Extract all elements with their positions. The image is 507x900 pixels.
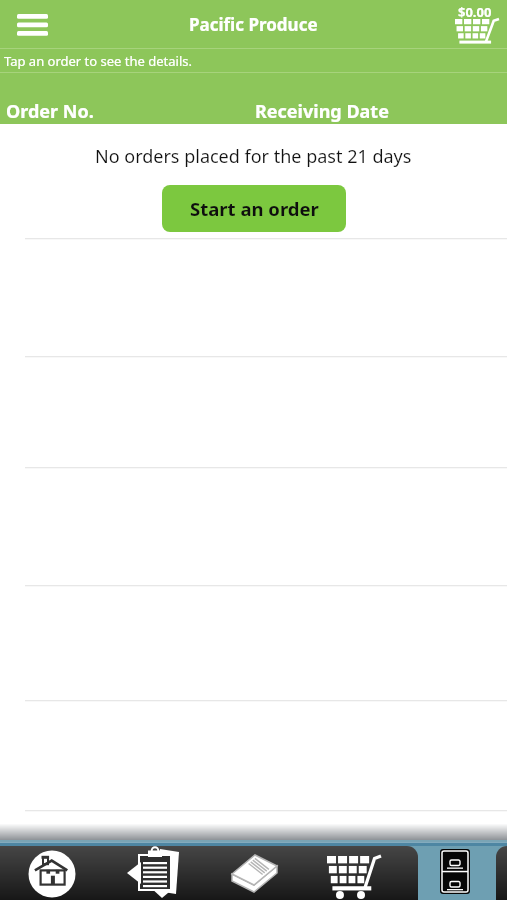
staticText: Start an order xyxy=(190,196,319,221)
button[interactable] xyxy=(406,840,507,900)
button[interactable]: Start an order xyxy=(162,185,346,232)
button[interactable] xyxy=(102,840,204,900)
button[interactable]: $0.00 xyxy=(446,0,504,50)
staticText: Order No. xyxy=(6,99,94,124)
staticText: No orders placed for the past 21 days xyxy=(95,144,412,169)
button[interactable] xyxy=(7,2,55,46)
staticText: Pacific Produce xyxy=(189,13,318,36)
button[interactable] xyxy=(305,840,406,900)
button[interactable] xyxy=(0,840,102,900)
staticText: $0.00 xyxy=(458,3,492,21)
button[interactable] xyxy=(204,840,305,900)
staticText: Tap an order to see the details. xyxy=(4,52,192,70)
staticText: Receiving Date xyxy=(255,99,389,124)
